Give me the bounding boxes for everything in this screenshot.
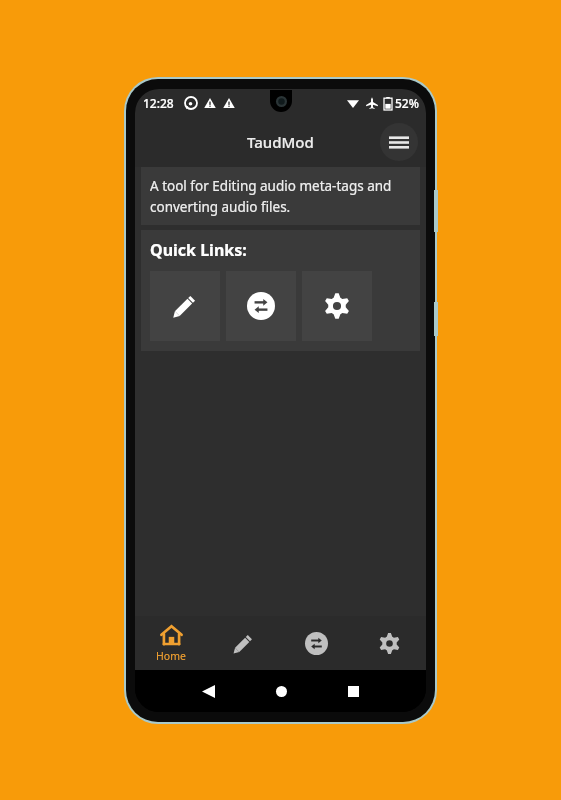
button[interactable]: Open menu bbox=[380, 123, 418, 161]
button[interactable]: Back bbox=[193, 676, 223, 706]
button[interactable]: Recent apps bbox=[338, 676, 368, 706]
staticText: Quick Links: bbox=[150, 239, 247, 261]
staticText: Home bbox=[156, 649, 186, 663]
button[interactable]: Settings bbox=[302, 271, 372, 341]
button[interactable]: Home bbox=[135, 616, 207, 670]
button[interactable]: Edit tags bbox=[150, 271, 220, 341]
button[interactable]: Settings bbox=[353, 616, 426, 670]
button[interactable]: A tool for Editing audio meta-tags and c… bbox=[141, 167, 420, 225]
staticText: 52% bbox=[395, 95, 419, 111]
button[interactable]: Home bbox=[266, 676, 296, 706]
button[interactable]: Convert bbox=[280, 616, 353, 670]
button[interactable]: Convert bbox=[226, 271, 296, 341]
staticText: A tool for Editing audio meta-tags and c… bbox=[150, 177, 411, 216]
staticText: 12:28 bbox=[143, 95, 174, 111]
button[interactable]: Edit tags bbox=[207, 616, 280, 670]
staticText: TaudMod bbox=[247, 132, 314, 152]
